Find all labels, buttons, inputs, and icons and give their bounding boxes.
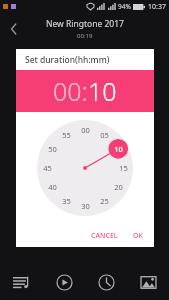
button[interactable]: Timer xyxy=(85,264,127,300)
button[interactable]: Play xyxy=(43,264,85,300)
staticText: 25 xyxy=(100,196,109,206)
staticText: New Ringtone 2017 xyxy=(46,18,124,30)
staticText: 40 xyxy=(48,182,57,192)
staticText: 00:19 xyxy=(77,32,93,40)
staticText: Set duration(hh:mm) xyxy=(25,54,110,66)
button[interactable]: Back xyxy=(0,15,28,43)
button[interactable]: Playlist xyxy=(0,264,43,300)
staticText: 30 xyxy=(81,201,90,211)
staticText: 94% xyxy=(118,2,131,11)
staticText: OK xyxy=(133,231,143,241)
button[interactable]: CANCEL xyxy=(86,227,123,245)
staticText: 00 xyxy=(81,125,90,135)
button[interactable]: Gallery xyxy=(127,264,169,300)
staticText: 15 xyxy=(119,163,128,173)
staticText: 20 xyxy=(114,182,123,192)
staticText: 05 xyxy=(100,130,109,140)
staticText: CANCEL xyxy=(91,231,118,241)
staticText: 10:37 xyxy=(148,2,166,12)
staticText: 10 xyxy=(114,144,123,154)
staticText: 10 xyxy=(88,74,117,108)
staticText: 00: xyxy=(53,74,88,108)
staticText: 45 xyxy=(43,163,52,173)
staticText: 35 xyxy=(62,196,71,206)
staticText: 50 xyxy=(48,144,57,154)
staticText: 55 xyxy=(62,130,71,140)
button[interactable]: OK xyxy=(128,227,148,245)
